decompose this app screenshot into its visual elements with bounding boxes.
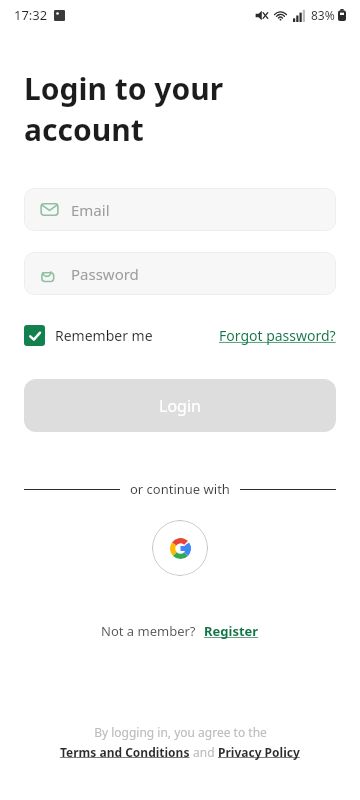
staticText: Login to your (24, 68, 224, 109)
staticText: 83% (311, 7, 335, 23)
button[interactable]: Forgot password? (219, 326, 336, 345)
button[interactable]: Continue with Google (152, 520, 208, 576)
button[interactable]: Password (24, 252, 336, 295)
staticText: Email (71, 200, 110, 220)
button[interactable]: Remember me (24, 325, 153, 346)
staticText: and (190, 744, 218, 760)
staticText: Not a member? (101, 622, 196, 640)
staticText: Terms and Conditions (60, 744, 190, 760)
staticText: 17:32 (14, 6, 48, 24)
staticText: Privacy Policy (218, 744, 300, 760)
staticText: Remember me (55, 326, 153, 345)
button[interactable]: Register (204, 622, 259, 640)
staticText: Forgot password? (219, 326, 336, 345)
staticText: Register (204, 622, 259, 640)
staticText: By logging in, you agree to the (94, 724, 267, 740)
button[interactable]: Login (24, 379, 336, 432)
staticText: or continue with (130, 480, 230, 498)
staticText: account (24, 109, 144, 150)
staticText: Login (159, 395, 201, 417)
staticText: Password (71, 264, 139, 284)
button[interactable]: Privacy Policy (218, 744, 300, 760)
button[interactable]: Email (24, 188, 336, 231)
button[interactable]: Terms and Conditions (60, 744, 190, 760)
